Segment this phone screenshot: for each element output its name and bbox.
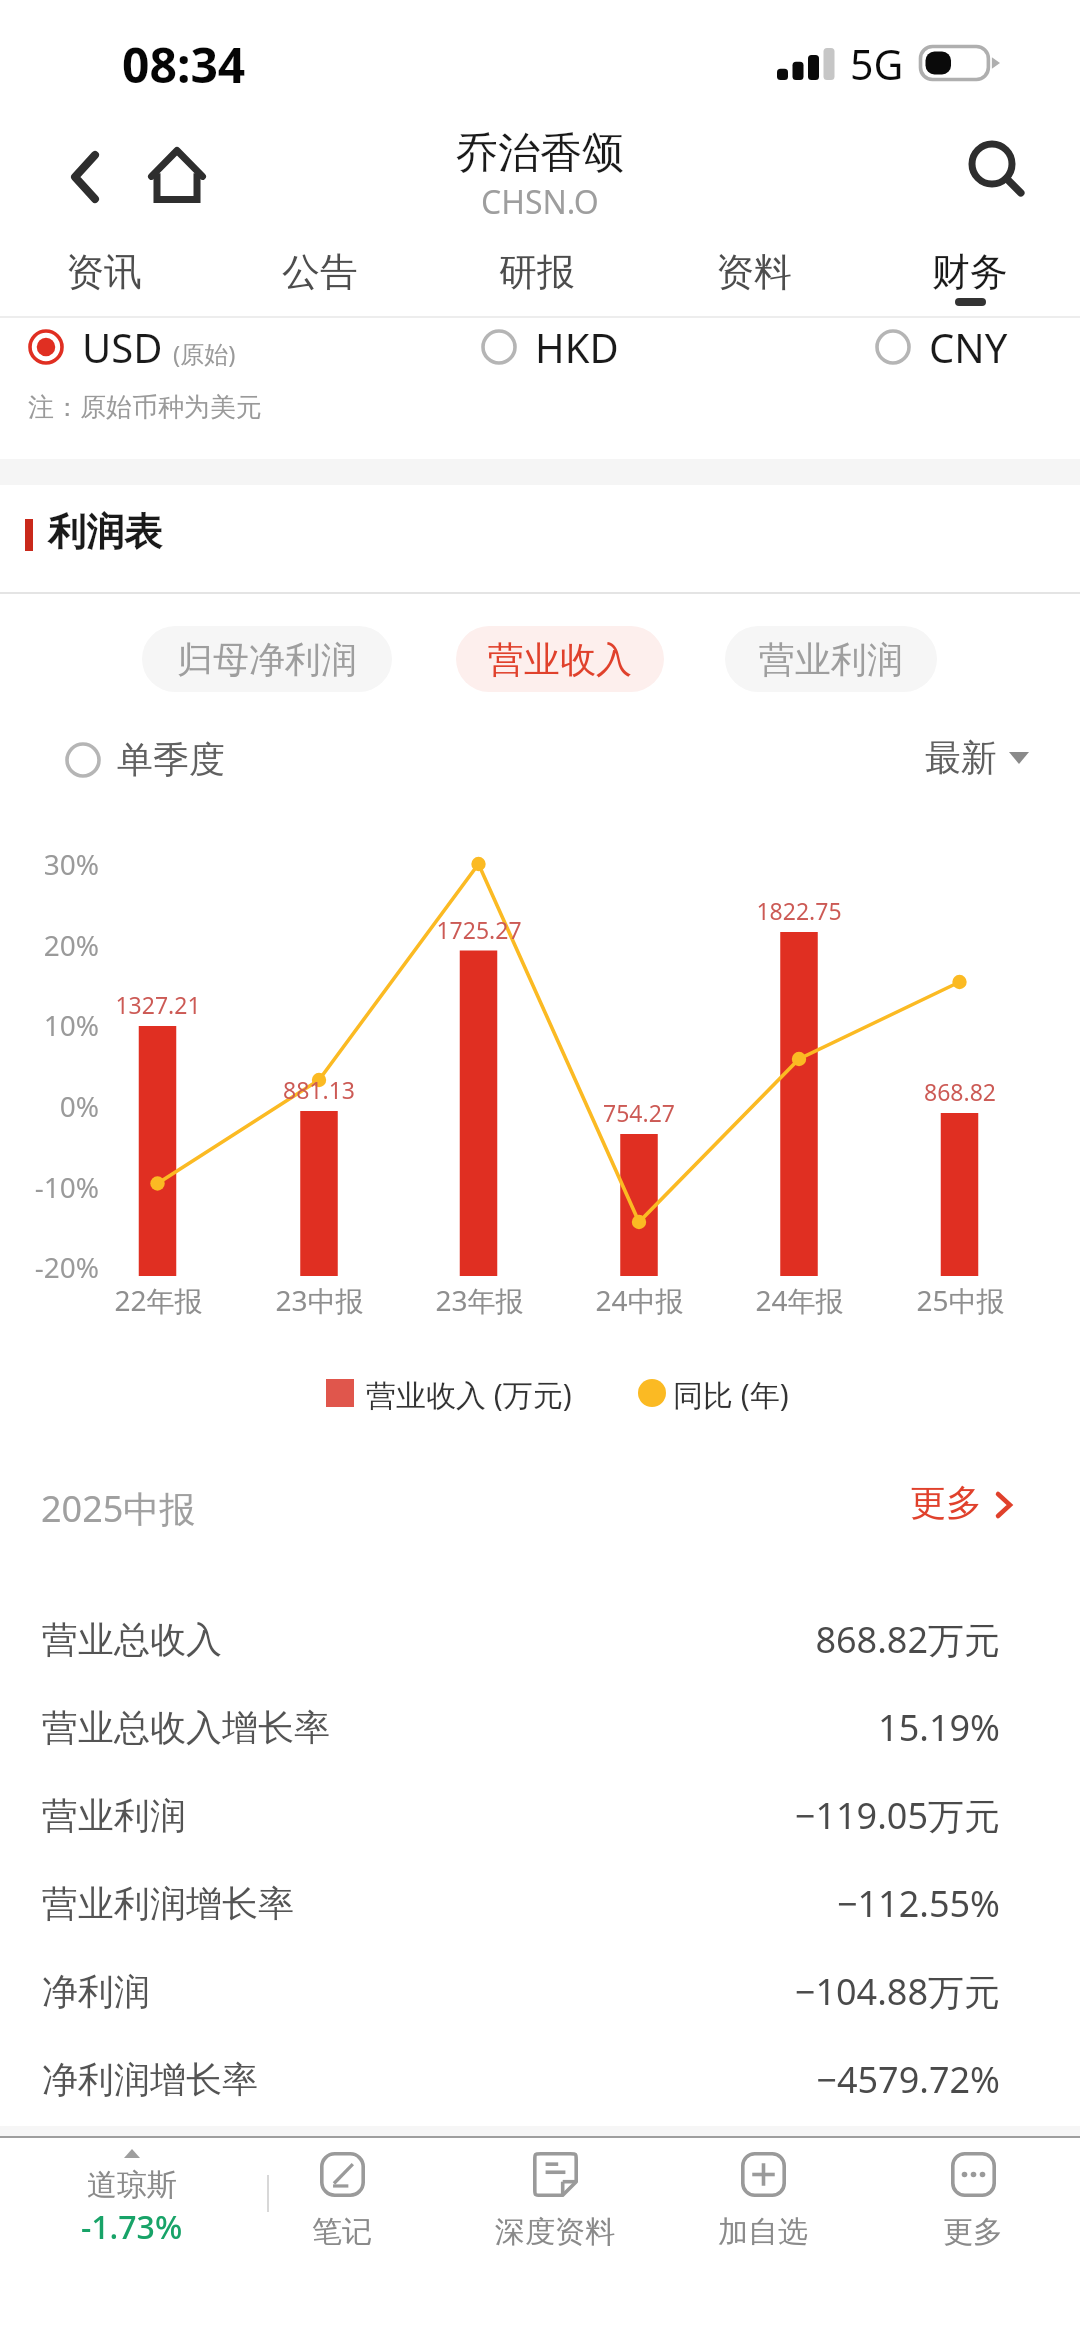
staticText: 24中报 (595, 1281, 684, 1317)
button[interactable]: 单季度 (59, 731, 231, 788)
button[interactable]: 笔记 (242, 2140, 442, 2260)
button[interactable]: 营业利润 (725, 626, 937, 692)
button[interactable]: 最新 (919, 729, 1035, 786)
staticText: -1.73% (81, 2205, 183, 2249)
staticText: 营业总收入 (42, 1617, 222, 1662)
staticText: 同比 (年) (673, 1374, 789, 1415)
staticText: 1725.27 (436, 914, 522, 945)
staticText: 22年报 (114, 1281, 203, 1317)
staticText: CNY (929, 320, 1008, 374)
button[interactable]: 更多 (904, 1474, 1018, 1531)
staticText: 更多 (943, 2213, 1003, 2251)
button[interactable]: 资讯 (0, 248, 212, 326)
staticText: 24年报 (755, 1281, 844, 1317)
staticText: 23中报 (275, 1281, 364, 1317)
staticText: -20% (34, 1248, 99, 1286)
staticText: 利润表 (48, 508, 162, 556)
staticText: 资讯 (66, 248, 142, 296)
staticText: 881.13 (283, 1074, 355, 1105)
staticText: 25中报 (916, 1281, 1005, 1317)
staticText: -10% (34, 1168, 99, 1206)
staticText: 更多 (910, 1480, 982, 1525)
staticText: 1327.21 (115, 989, 201, 1020)
staticText: USD (82, 320, 163, 374)
staticText: 营业收入 (万元) (366, 1374, 572, 1415)
button[interactable]: 资料 (646, 248, 862, 326)
staticText: 公告 (282, 248, 358, 296)
staticText: 20% (43, 926, 99, 964)
staticText: 加自选 (718, 2213, 808, 2251)
staticText: 营业利润增长率 (42, 1881, 294, 1926)
staticText: 868.82 (924, 1076, 996, 1107)
button[interactable]: USD (24, 316, 240, 378)
button[interactable]: CNY (871, 316, 1012, 378)
staticText: 道琼斯 (87, 2166, 177, 2204)
button[interactable]: 营业利润增长率 (0, 1863, 1080, 1951)
staticText: 营业利润 (42, 1793, 186, 1838)
staticText: 研报 (499, 248, 575, 296)
staticText: (原始) (173, 337, 236, 370)
button[interactable]: 研报 (429, 248, 645, 326)
staticText: 23年报 (435, 1281, 524, 1317)
button[interactable]: 营业总收入 (0, 1599, 1080, 1687)
staticText: 净利润 (42, 1969, 150, 2014)
staticText: −4579.72% (816, 2055, 1000, 2104)
staticText: 营业利润 (759, 637, 903, 682)
staticText: 30% (43, 845, 99, 883)
button[interactable]: Search (960, 130, 1032, 202)
staticText: CHSN.O (481, 180, 599, 224)
button[interactable]: 加自选 (663, 2140, 863, 2260)
button[interactable]: 深度资料 (455, 2140, 655, 2260)
button[interactable]: 更多 (873, 2140, 1073, 2260)
staticText: 资料 (716, 248, 792, 296)
staticText: −112.55% (836, 1879, 1000, 1928)
staticText: 营业收入 (488, 637, 632, 682)
staticText: 868.82万元 (815, 1615, 1000, 1664)
button[interactable]: Back (47, 139, 123, 215)
button[interactable]: 道琼斯 (22, 2140, 242, 2260)
button[interactable]: 财务 (862, 248, 1078, 326)
staticText: 归母净利润 (177, 637, 357, 682)
staticText: 10% (43, 1006, 99, 1044)
button[interactable]: 营业利润 (0, 1775, 1080, 1863)
staticText: 笔记 (312, 2213, 372, 2251)
staticText: 1822.75 (756, 895, 842, 926)
button[interactable]: 公告 (212, 248, 428, 326)
staticText: 2025中报 (41, 1484, 196, 1533)
staticText: −119.05万元 (794, 1791, 1000, 1840)
staticText: 注：原始币种为美元 (28, 391, 262, 424)
staticText: 0% (59, 1087, 99, 1125)
staticText: 财务 (932, 248, 1008, 296)
staticText: 08:34 (122, 32, 246, 97)
staticText: 乔治香颂 (456, 127, 624, 180)
staticText: 5G (850, 36, 904, 92)
button[interactable]: HKD (477, 316, 623, 378)
staticText: 最新 (925, 735, 997, 780)
staticText: 深度资料 (495, 2213, 615, 2251)
staticText: 单季度 (117, 737, 225, 782)
button[interactable]: 营业总收入增长率 (0, 1687, 1080, 1775)
button[interactable]: 营业收入 (456, 626, 664, 692)
staticText: 净利润增长率 (42, 2057, 258, 2102)
staticText: 754.27 (603, 1097, 675, 1128)
button[interactable]: 净利润 (0, 1951, 1080, 2039)
staticText: HKD (535, 320, 619, 374)
staticText: 营业总收入增长率 (42, 1705, 330, 1750)
button[interactable]: Home (139, 137, 215, 213)
button[interactable]: 归母净利润 (142, 626, 392, 692)
staticText: 15.19% (878, 1703, 1000, 1752)
staticText: −104.88万元 (794, 1967, 1000, 2016)
button[interactable]: 净利润增长率 (0, 2039, 1080, 2127)
